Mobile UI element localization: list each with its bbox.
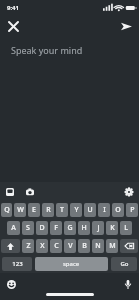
staticText: E [32,205,36,215]
staticText: 123 [12,260,23,268]
button[interactable]: M [106,239,118,253]
staticText: T [60,205,64,215]
staticText: H [81,223,87,233]
button[interactable]: U [84,203,96,217]
staticText: B [82,241,87,251]
staticText: J [97,223,100,233]
button[interactable]: O [112,203,124,217]
staticText: O [115,205,121,215]
button[interactable]: H [78,221,90,235]
button[interactable]: R [42,203,54,217]
staticText: space [63,260,80,268]
button[interactable]: Camera [23,185,37,199]
button[interactable]: P [126,203,138,217]
button[interactable]: B [78,239,90,253]
staticText: P [130,205,135,215]
button[interactable]: Y [70,203,82,217]
button[interactable]: 123 [2,257,32,271]
button[interactable]: Backspace [120,239,138,253]
button[interactable]: Keyboard settings [122,185,136,199]
staticText: K [110,223,115,233]
button[interactable]: J [92,221,104,235]
staticText: Speak your mind [11,44,83,56]
staticText: 9:41 [7,4,19,12]
button[interactable]: L [120,221,132,235]
button[interactable]: Voice input [121,277,135,291]
button[interactable]: Go [111,257,137,271]
staticText: D [39,223,45,233]
button[interactable]: N [92,239,104,253]
button[interactable]: Z [22,239,34,253]
staticText: F [54,223,58,233]
staticText: S [26,223,30,233]
button[interactable]: D [36,221,48,235]
button[interactable]: Emoji [4,277,18,291]
staticText: G [67,223,73,233]
staticText: Z [26,241,31,251]
staticText: W [17,205,24,215]
button[interactable]: space [35,257,108,271]
button[interactable]: Shift [1,239,20,253]
staticText: M [109,241,116,251]
button[interactable]: Close [3,16,23,36]
button[interactable]: F [50,221,62,235]
button[interactable]: V [64,239,76,253]
button[interactable]: Q [1,203,12,217]
button[interactable]: Send [116,16,136,36]
staticText: U [87,205,93,215]
staticText: I [103,205,106,215]
button[interactable]: E [28,203,40,217]
button[interactable]: A [7,221,20,235]
button[interactable]: S [22,221,34,235]
staticText: R [46,205,51,215]
staticText: X [40,241,45,251]
staticText: Go [120,260,129,268]
staticText: V [68,241,73,251]
button[interactable]: X [36,239,48,253]
staticText: Y [74,205,79,215]
staticText: N [95,241,101,251]
staticText: L [124,223,128,233]
button[interactable]: I [98,203,110,217]
button[interactable]: G [64,221,76,235]
button[interactable]: C [50,239,62,253]
staticText: Q [4,205,10,215]
button[interactable]: Stickers [3,185,17,199]
staticText: C [54,241,59,251]
button[interactable]: T [56,203,68,217]
button[interactable]: W [14,203,26,217]
button[interactable]: K [106,221,118,235]
staticText: A [11,223,16,233]
